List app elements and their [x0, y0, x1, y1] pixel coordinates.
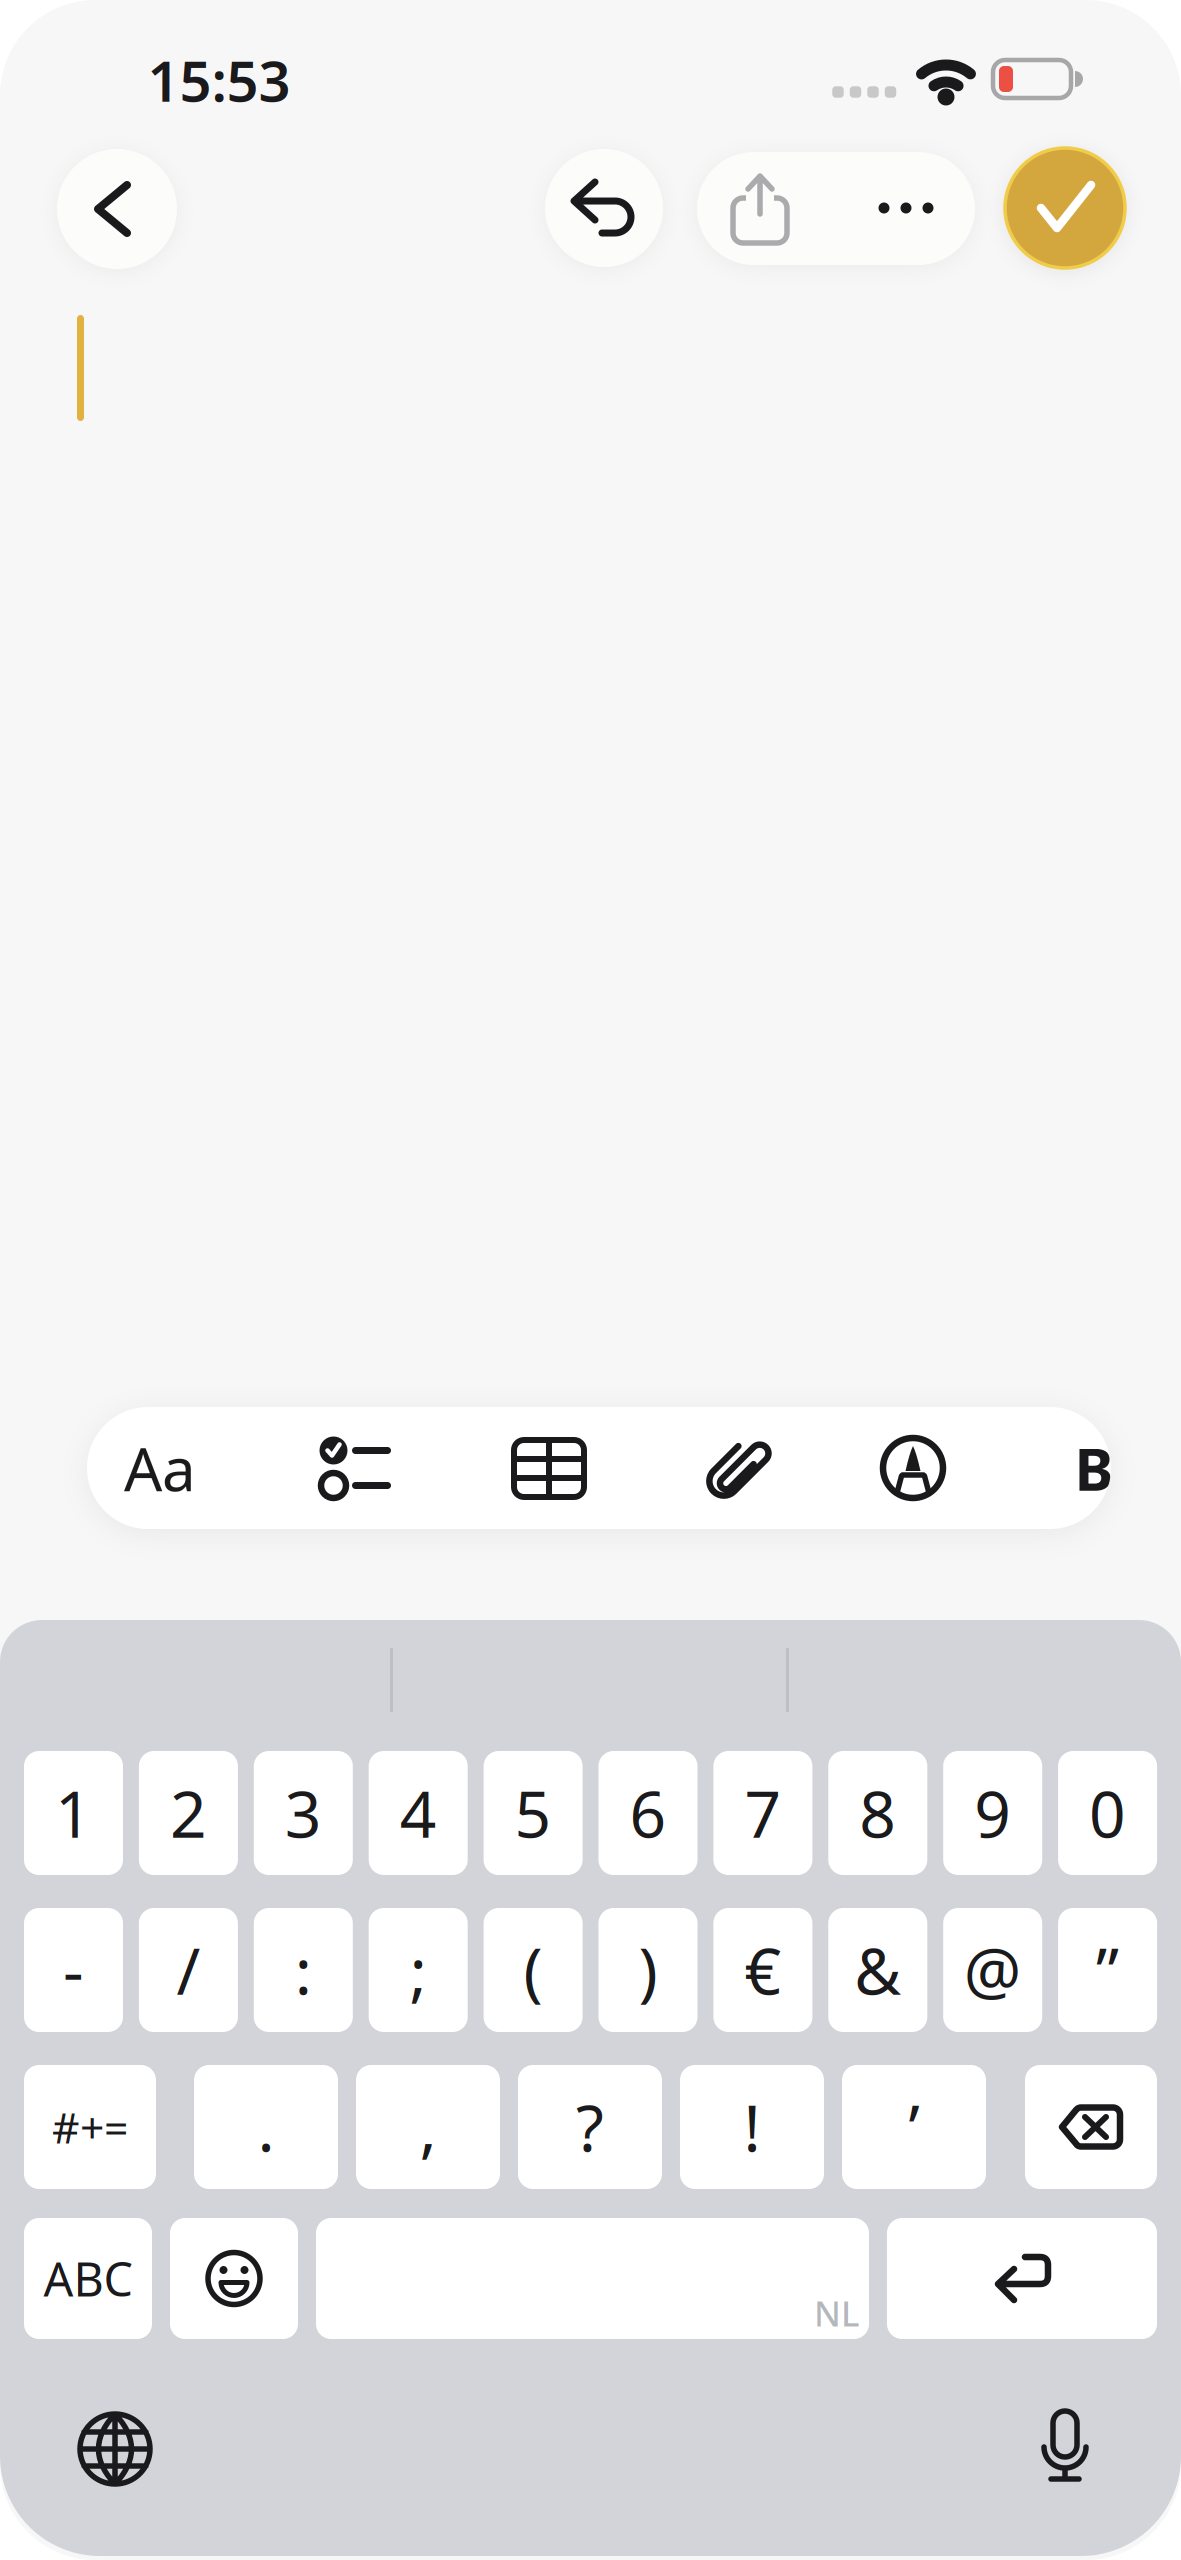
- staticText: :: [295, 1927, 312, 2012]
- button[interactable]: Table: [511, 1437, 587, 1500]
- staticText: &: [854, 1927, 901, 2012]
- staticText: 0: [1089, 1770, 1126, 1855]
- button[interactable]: #+=: [24, 2065, 156, 2189]
- staticText: ”: [1096, 1927, 1119, 2012]
- staticText: ): [638, 1927, 657, 2012]
- staticText: 5: [515, 1770, 552, 1855]
- button[interactable]: More: [843, 152, 969, 265]
- button[interactable]: Back: [57, 149, 177, 269]
- staticText: €: [744, 1927, 781, 2012]
- button[interactable]: Space: [316, 2218, 869, 2339]
- button[interactable]: .: [194, 2065, 338, 2189]
- button[interactable]: Undo: [545, 149, 663, 267]
- button[interactable]: 0: [1058, 1751, 1157, 1875]
- staticText: (: [524, 1927, 543, 2012]
- staticText: 15:53: [147, 43, 290, 117]
- button[interactable]: ABC: [24, 2218, 152, 2339]
- button[interactable]: 3: [254, 1751, 353, 1875]
- button[interactable]: Checklist: [301, 1410, 404, 1525]
- button[interactable]: Share: [697, 152, 823, 265]
- button[interactable]: Next keyboard: [77, 2411, 153, 2487]
- button[interactable]: Emoji: [170, 2218, 298, 2339]
- staticText: 9: [974, 1770, 1011, 1855]
- button[interactable]: &: [828, 1908, 927, 2032]
- staticText: 1: [55, 1770, 92, 1855]
- button[interactable]: Done: [1005, 148, 1125, 268]
- button[interactable]: ”: [1058, 1908, 1157, 2032]
- button[interactable]: ,: [356, 2065, 500, 2189]
- staticText: 3: [285, 1770, 322, 1855]
- button[interactable]: ): [598, 1908, 697, 2032]
- staticText: !: [743, 2084, 760, 2169]
- staticText: ;: [410, 1927, 427, 2012]
- staticText: /: [176, 1927, 200, 2012]
- button[interactable]: 2: [139, 1751, 238, 1875]
- staticText: ABC: [43, 2247, 132, 2309]
- button[interactable]: 5: [484, 1751, 583, 1875]
- button[interactable]: ?: [518, 2065, 662, 2189]
- button[interactable]: €: [713, 1908, 812, 2032]
- button[interactable]: :: [254, 1908, 353, 2032]
- button[interactable]: ;: [369, 1908, 468, 2032]
- button[interactable]: ’: [842, 2065, 986, 2189]
- button[interactable]: 9: [943, 1751, 1042, 1875]
- button[interactable]: /: [139, 1908, 238, 2032]
- staticText: B: [1074, 1429, 1113, 1507]
- staticText: NL: [814, 2290, 860, 2336]
- button[interactable]: 1: [24, 1751, 123, 1875]
- button[interactable]: Delete: [1025, 2065, 1157, 2189]
- button[interactable]: Format: [90, 1407, 230, 1529]
- staticText: 2: [170, 1770, 207, 1855]
- button[interactable]: Return: [887, 2218, 1157, 2339]
- button[interactable]: 4: [369, 1751, 468, 1875]
- staticText: 8: [859, 1770, 896, 1855]
- button[interactable]: -: [24, 1908, 123, 2032]
- staticText: #+=: [52, 2099, 128, 2155]
- button[interactable]: Markup: [880, 1435, 946, 1501]
- button[interactable]: Bold: [1064, 1415, 1124, 1520]
- staticText: -: [63, 1927, 84, 2012]
- button[interactable]: (: [484, 1908, 583, 2032]
- staticText: 7: [744, 1770, 781, 1855]
- staticText: @: [964, 1927, 1022, 2012]
- button[interactable]: @: [943, 1908, 1042, 2032]
- button[interactable]: 7: [713, 1751, 812, 1875]
- staticText: ’: [908, 2084, 919, 2169]
- staticText: ?: [576, 2084, 604, 2169]
- button[interactable]: !: [680, 2065, 824, 2189]
- button[interactable]: 8: [828, 1751, 927, 1875]
- button[interactable]: Dictate: [1027, 2409, 1103, 2485]
- button[interactable]: 6: [598, 1751, 697, 1875]
- staticText: 6: [629, 1770, 666, 1855]
- staticText: Aa: [124, 1428, 196, 1508]
- button[interactable]: Attach: [704, 1434, 772, 1500]
- staticText: ,: [419, 2084, 436, 2169]
- staticText: 4: [400, 1770, 437, 1855]
- staticText: .: [257, 2084, 274, 2169]
